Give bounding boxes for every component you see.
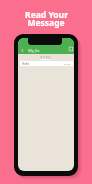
button[interactable]: More options: [68, 46, 74, 52]
button[interactable]: Hello: [20, 61, 73, 66]
button[interactable]: YESTERDAY: [40, 56, 51, 60]
staticText: Read Your: [25, 9, 68, 21]
staticText: Hello: [22, 62, 30, 66]
button[interactable]: Back: [19, 47, 25, 53]
staticText: 10:15: [64, 62, 71, 65]
staticText: My Jio: [28, 48, 40, 53]
staticText: Message: [27, 17, 65, 29]
staticText: YESTERDAY: [40, 56, 51, 60]
